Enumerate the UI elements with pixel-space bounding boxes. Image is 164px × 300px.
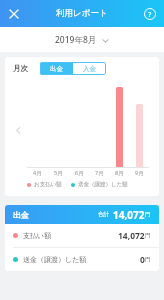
button[interactable]: 送金（譲渡）した額 [5, 248, 159, 271]
staticText: 支払い額 [23, 231, 52, 240]
button[interactable]: 2019年8月 [47, 30, 117, 50]
button[interactable]: 支払い額 [5, 224, 159, 247]
staticText: 5月 [54, 169, 63, 177]
staticText: 円 [145, 232, 151, 239]
staticText: 月次 [13, 64, 28, 73]
staticText: 4月 [33, 169, 42, 177]
button[interactable]: Previous [10, 122, 26, 138]
staticText: 利用レポート [56, 8, 108, 19]
staticText: 7月 [95, 169, 104, 177]
staticText: 合計 [98, 211, 109, 218]
button[interactable]: Help [140, 4, 160, 24]
staticText: 14,072 [118, 230, 145, 242]
button[interactable]: 入金 [73, 62, 106, 75]
staticText: 送金（譲渡）した額 [78, 181, 128, 188]
staticText: 円 [145, 256, 151, 263]
staticText: 6月 [75, 169, 84, 177]
staticText: 送金（譲渡）した額 [23, 255, 87, 264]
staticText: 9月 [135, 169, 144, 177]
staticText: 入金 [83, 65, 96, 73]
button[interactable]: Close [4, 4, 24, 24]
button[interactable]: 出金 [40, 62, 73, 75]
staticText: 14,072 [113, 208, 145, 222]
staticText: 円 [145, 211, 151, 218]
staticText: 出金 [50, 65, 63, 73]
staticText: 出金 [13, 210, 29, 220]
staticText: 8月 [115, 169, 124, 177]
staticText: お支払い額 [34, 181, 62, 188]
staticText: 2019年8月 [55, 34, 97, 46]
staticText: ? [148, 9, 152, 19]
staticText: 0 [140, 254, 145, 266]
